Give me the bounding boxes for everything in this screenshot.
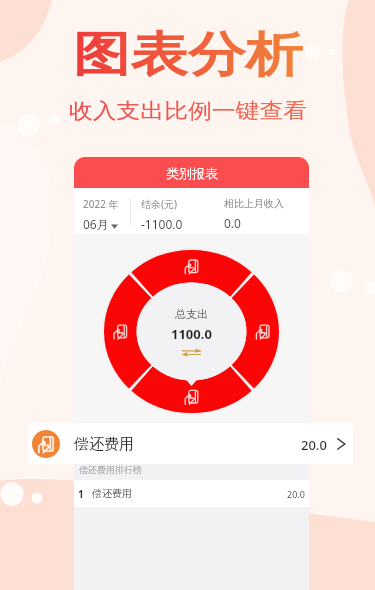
staticText: 总支出: [175, 307, 208, 321]
staticText: 0.0: [224, 215, 241, 231]
staticText: 偿还费用: [92, 487, 132, 500]
staticText: 20.0: [301, 436, 327, 454]
staticText: 偿还费用: [74, 435, 134, 454]
staticText: 收入支出比例一键查看: [69, 98, 307, 125]
staticText: 相比上月收入: [224, 197, 284, 210]
staticText: 1: [78, 487, 84, 501]
staticText: -1100.0: [141, 216, 183, 232]
button[interactable]: 1: [74, 480, 309, 507]
staticText: 06月: [83, 216, 109, 232]
staticText: 类别报表: [166, 165, 218, 181]
staticText: 结余(元): [141, 197, 177, 211]
staticText: 20.0: [287, 488, 305, 500]
staticText: 2022 年: [83, 197, 119, 211]
staticText: 1100.0: [171, 325, 212, 343]
button[interactable]: 偿还费用: [28, 423, 353, 464]
staticText: 图表分析: [73, 25, 303, 86]
staticText: 偿还费用排行榜: [79, 464, 142, 475]
